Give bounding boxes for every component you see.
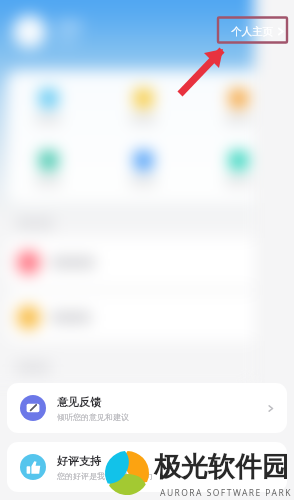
button[interactable]: 意见反馈: [7, 383, 287, 433]
button[interactable]: [115, 151, 171, 185]
staticText: 个人主页: [231, 25, 273, 38]
staticText: 极光软件园: [154, 450, 289, 484]
staticText: 意见反馈: [57, 395, 101, 409]
button[interactable]: 个人主页: [231, 25, 285, 38]
button[interactable]: [7, 293, 287, 341]
button[interactable]: [20, 89, 76, 123]
button[interactable]: [115, 89, 171, 123]
staticText: 您的好评是我们前进的动力: [57, 471, 153, 481]
button[interactable]: [7, 238, 287, 287]
button[interactable]: [20, 151, 76, 185]
staticText: 好评支持: [57, 454, 101, 468]
button[interactable]: [210, 151, 266, 185]
staticText: 倾听您的意见和建议: [57, 412, 129, 422]
button[interactable]: [210, 89, 266, 123]
button[interactable]: 好评支持: [7, 442, 287, 492]
staticText: AURORA SOFTWARE PARK: [160, 487, 292, 499]
